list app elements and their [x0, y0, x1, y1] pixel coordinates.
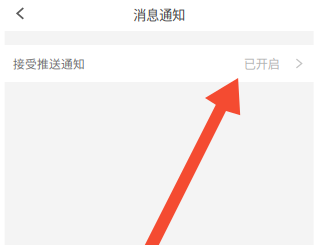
button[interactable]: Back	[5, 0, 45, 31]
staticText: 消息通知	[133, 4, 185, 23]
staticText: 接受推送通知	[13, 55, 85, 72]
staticText: 已开启	[244, 55, 280, 72]
button[interactable]: 接受推送通知	[5, 45, 314, 82]
